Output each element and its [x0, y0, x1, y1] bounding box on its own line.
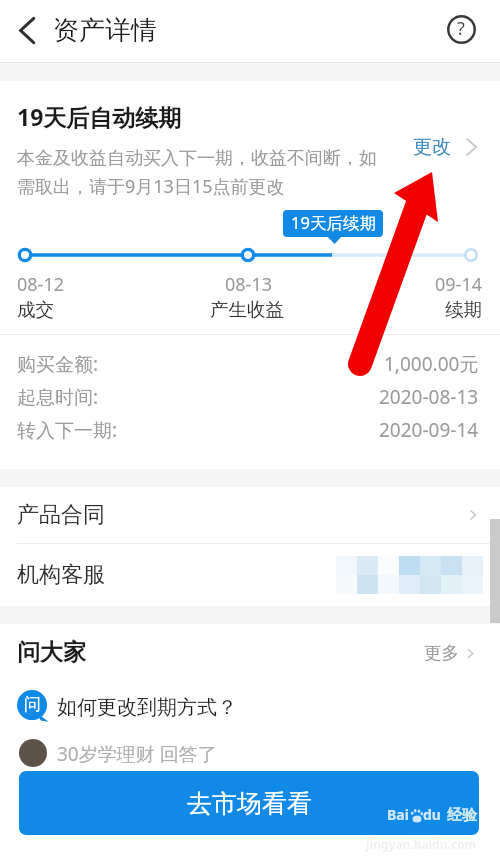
staticText: 30岁学理财 回答了 — [57, 741, 217, 767]
staticText: 更改 — [413, 135, 451, 159]
staticText: 经验 — [447, 806, 477, 825]
staticText: 如何更改到期方式？ — [57, 695, 237, 720]
button[interactable]: 去市场看看 — [19, 771, 479, 835]
staticText: 19天后自动续期 — [17, 101, 182, 132]
staticText: 产品合同 — [17, 501, 105, 529]
button[interactable]: 产品合同 — [0, 487, 500, 543]
button[interactable]: 更多 — [424, 642, 477, 664]
staticText: 机构客服 — [17, 561, 105, 589]
staticText: 成交 — [17, 298, 54, 321]
staticText: 2020-08-13 — [379, 384, 479, 410]
staticText: du — [423, 805, 441, 824]
staticText: 起息时间: — [17, 384, 99, 410]
staticText: jingyan.baidu.com — [366, 836, 477, 852]
staticText: 去市场看看 — [187, 788, 312, 819]
staticText: 续期 — [445, 298, 482, 321]
staticText: 问大家 — [17, 638, 86, 667]
staticText: 1,000.00元 — [384, 351, 479, 377]
button[interactable]: 机构客服 — [0, 544, 500, 606]
staticText: 本金及收益自动买入下一期，收益不间断，如 — [17, 147, 377, 170]
staticText: 需取出，请于9月13日15点前更改 — [17, 174, 285, 199]
staticText: 转入下一期: — [17, 417, 118, 443]
staticText: 资产详情 — [53, 14, 157, 47]
button[interactable]: 更改 — [413, 135, 477, 159]
staticText: 09-14 — [435, 272, 482, 297]
staticText: 购买金额: — [17, 351, 99, 377]
staticText: 19天后续期 — [291, 211, 376, 234]
button[interactable]: Back — [3, 6, 51, 54]
staticText: 08-12 — [17, 272, 64, 297]
button[interactable]: 问 — [17, 690, 237, 722]
staticText: 更多 — [424, 642, 459, 664]
staticText: Bai — [387, 805, 409, 824]
staticText: 问 — [24, 694, 41, 715]
staticText: 产生收益 — [210, 298, 284, 321]
button[interactable]: Help — [439, 7, 483, 51]
staticText: 2020-09-14 — [379, 417, 479, 443]
staticText: 08-13 — [225, 272, 272, 297]
staticText: ? — [457, 16, 465, 41]
